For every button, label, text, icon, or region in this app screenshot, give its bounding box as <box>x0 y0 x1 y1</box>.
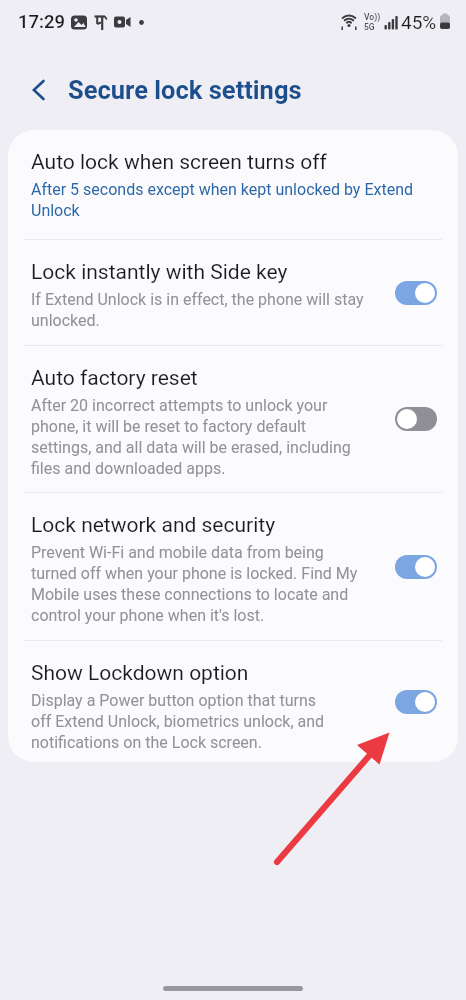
button[interactable] <box>395 690 437 714</box>
button[interactable]: Auto lock when screen turns off <box>8 130 458 239</box>
button[interactable]: Lock network and security <box>8 493 458 640</box>
button[interactable] <box>395 281 437 305</box>
button[interactable] <box>22 73 56 107</box>
staticText: Auto factory reset <box>31 366 198 391</box>
staticText: Display a Power button option that turns… <box>31 691 325 752</box>
staticText: Show Lockdown option <box>31 661 249 686</box>
staticText: Secure lock settings <box>68 75 302 105</box>
staticText: Vo)) <box>364 12 381 22</box>
staticText: 5G <box>364 22 375 32</box>
staticText: 45% <box>401 11 437 33</box>
staticText: Lock instantly with Side key <box>31 260 288 285</box>
staticText: After 5 seconds except when kept unlocke… <box>31 180 413 220</box>
staticText: Prevent Wi-Fi and mobile data from being… <box>31 543 358 625</box>
staticText: 17:29 <box>18 11 65 33</box>
button[interactable]: Lock instantly with Side key <box>8 240 458 345</box>
staticText: Lock network and security <box>31 513 276 538</box>
staticText: After 20 incorrect attempts to unlock yo… <box>31 396 351 478</box>
staticText: Auto lock when screen turns off <box>31 150 327 175</box>
staticText: If Extend Unlock is in effect, the phone… <box>31 290 364 330</box>
button[interactable]: Show Lockdown option <box>8 641 458 762</box>
button[interactable]: Auto factory reset <box>8 346 458 492</box>
button[interactable] <box>395 407 437 431</box>
button[interactable] <box>395 555 437 579</box>
